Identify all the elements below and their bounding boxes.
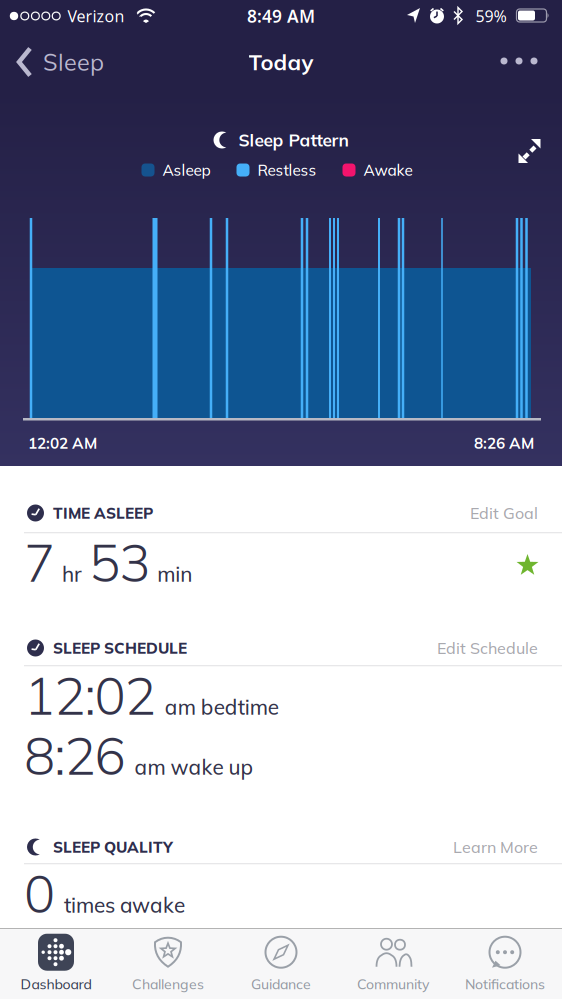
staticText: Challenges (132, 975, 204, 993)
staticText: min (157, 561, 192, 587)
staticText: Edit Goal (470, 503, 538, 523)
button[interactable]: Guidance (251, 933, 311, 993)
button[interactable]: Community (357, 933, 429, 993)
button[interactable]: Sleep (16, 46, 104, 77)
button[interactable] (500, 57, 537, 64)
staticText: am wake up (135, 754, 254, 780)
staticText: Dashboard (20, 975, 91, 993)
staticText: Verizon (67, 5, 124, 27)
staticText: Community (357, 975, 429, 993)
staticText: Edit Schedule (437, 638, 538, 658)
staticText: times awake (64, 892, 185, 918)
staticText: Restless (257, 160, 316, 180)
staticText: Today (248, 48, 313, 76)
staticText: hr (62, 561, 82, 587)
button[interactable]: Dashboard (20, 933, 91, 993)
staticText: 12:02 (24, 662, 156, 728)
staticText: SLEEP SCHEDULE (53, 638, 187, 658)
button[interactable]: Notifications (465, 933, 545, 993)
staticText: TIME ASLEEP (53, 503, 153, 523)
staticText: 8:26 AM (474, 433, 534, 453)
staticText: Sleep (43, 47, 104, 77)
staticText: Sleep Pattern (238, 129, 348, 151)
staticText: Learn More (453, 837, 538, 857)
staticText: SLEEP QUALITY (53, 837, 173, 857)
staticText: 8:26 (24, 722, 126, 788)
staticText: 12:02 AM (28, 433, 97, 453)
button[interactable]: Edit Schedule (437, 638, 538, 658)
staticText: Guidance (251, 975, 311, 993)
staticText: 7 (24, 529, 55, 595)
staticText: 59% (475, 5, 506, 27)
staticText: Notifications (465, 975, 545, 993)
staticText: 0 (24, 860, 55, 926)
staticText: Asleep (162, 160, 210, 180)
button[interactable] (518, 138, 542, 164)
staticText: Awake (363, 160, 412, 180)
staticText: am bedtime (165, 694, 279, 720)
button[interactable]: Edit Goal (470, 503, 538, 523)
staticText: 53 (89, 529, 150, 595)
button[interactable]: Challenges (132, 933, 204, 993)
staticText: 8:49 AM (247, 4, 315, 27)
button[interactable]: Learn More (453, 837, 538, 857)
